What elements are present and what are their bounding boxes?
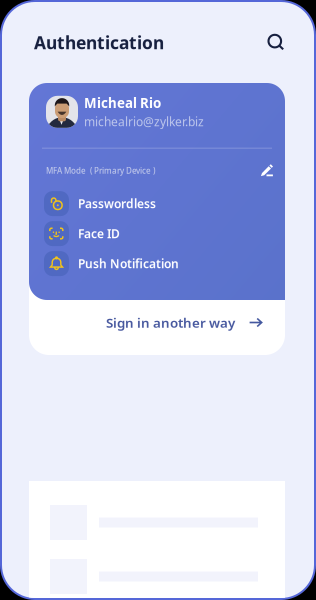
button[interactable]: Face ID	[29, 219, 285, 249]
button[interactable]: Push Notification	[29, 249, 285, 279]
staticText: Push Notification	[78, 256, 179, 272]
staticText: michealrio@zylker.biz	[84, 114, 204, 130]
staticText: Micheal Rio	[84, 94, 161, 112]
staticText: Authentication	[34, 31, 164, 54]
staticText: Sign in another way	[106, 314, 235, 331]
staticText: Face ID	[78, 226, 120, 242]
button[interactable]: Sign in another way	[29, 305, 285, 355]
button[interactable]: Passwordless	[29, 189, 285, 219]
button[interactable]: Search	[261, 27, 291, 57]
staticText: Passwordless	[78, 196, 156, 212]
button[interactable]: Edit MFA mode	[256, 160, 278, 182]
staticText: MFA Mode ( Primary Device )	[46, 165, 155, 176]
